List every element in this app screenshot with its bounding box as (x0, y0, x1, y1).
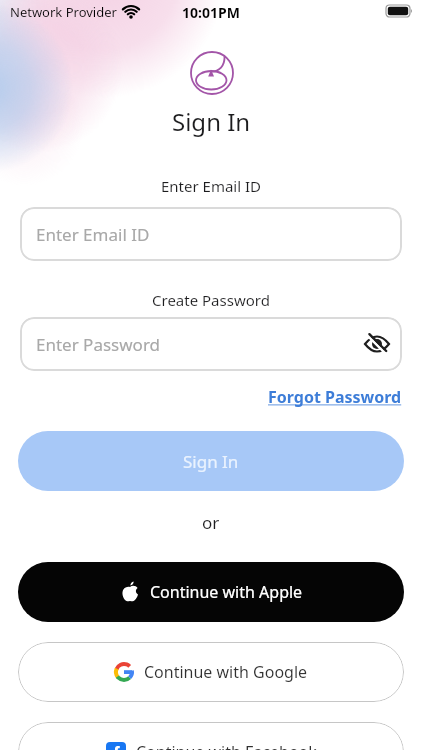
staticText: Enter Password (36, 333, 161, 356)
button[interactable]: Continue with Apple (18, 562, 404, 622)
button[interactable]: Continue with Facebook (18, 722, 404, 750)
button[interactable]: Forgot Password (268, 386, 402, 408)
staticText: Enter Email ID (161, 176, 262, 196)
staticText: 10:01PM (182, 3, 240, 22)
staticText: Continue with Facebook (136, 741, 317, 750)
staticText: Continue with Google (144, 661, 308, 683)
staticText: Enter Email ID (36, 223, 150, 246)
staticText: Continue with Apple (150, 581, 303, 603)
button[interactable]: Continue with Google (18, 642, 404, 702)
button[interactable]: Enter Password (20, 317, 402, 371)
staticText: Create Password (152, 290, 270, 310)
staticText: Network Provider (10, 3, 117, 21)
button[interactable]: Sign In (18, 431, 404, 491)
button[interactable]: Enter Email ID (20, 207, 402, 261)
staticText: Sign In (172, 105, 251, 138)
staticText: Sign In (183, 450, 239, 473)
staticText: or (202, 511, 220, 534)
